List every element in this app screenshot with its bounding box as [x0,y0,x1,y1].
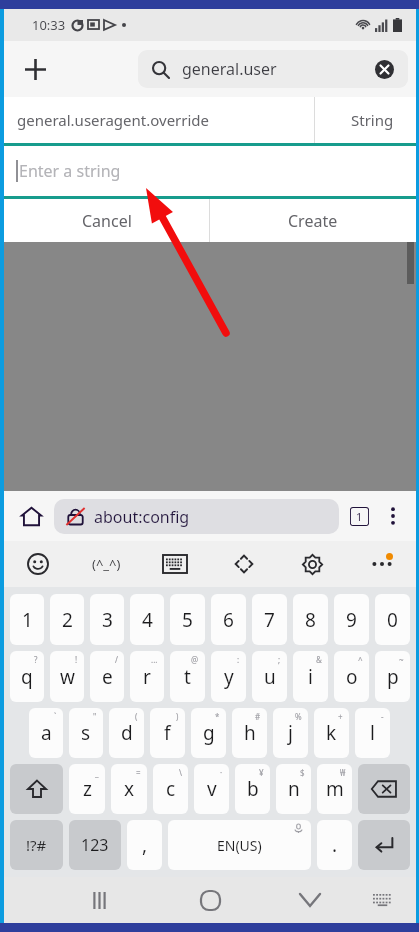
button[interactable]: x [111,764,147,814]
button[interactable]: 7 [252,594,287,645]
button[interactable]: 4 [130,594,164,645]
button[interactable]: Enter a string [4,146,416,196]
button[interactable]: r [130,651,164,702]
staticText: " [93,711,97,722]
button[interactable]: 1 [10,594,44,645]
staticText: String [351,110,394,130]
button[interactable]: Move cursor [209,541,278,587]
button[interactable]: 3 [90,594,124,645]
button[interactable]: s [69,708,103,758]
button[interactable]: o [334,651,369,702]
staticText: 1 [22,607,33,633]
button[interactable]: 6 [211,594,246,645]
button[interactable]: Menu [376,499,410,533]
button[interactable]: , [127,820,162,870]
staticText: r [143,664,151,690]
button[interactable]: EN(US) [168,820,311,870]
button[interactable]: c [153,764,188,814]
button[interactable]: general.user [138,50,408,88]
staticText: p [387,664,399,690]
button[interactable]: 9 [334,594,369,645]
button[interactable]: . [317,820,352,870]
button[interactable]: Backspace [358,764,410,814]
staticText: general.useragent.override [17,110,210,130]
staticText: · [220,767,223,778]
staticText: w [60,664,75,690]
staticText: x [124,776,135,802]
button[interactable]: Keyboard layout [140,541,209,587]
staticText: . [332,832,338,858]
button[interactable]: Hide keyboard [289,879,331,921]
button[interactable]: v [194,764,229,814]
button[interactable]: b [235,764,270,814]
button[interactable]: Emoji [4,541,72,587]
button[interactable]: n [276,764,311,814]
button[interactable]: Home [12,497,50,535]
button[interactable]: i [293,651,328,702]
button[interactable]: Recents [78,879,120,921]
button[interactable]: e [90,651,124,702]
button[interactable]: Enter [358,820,410,870]
staticText: ? [34,654,38,665]
staticText: * [215,711,220,722]
staticText: 123 [81,834,109,856]
button[interactable]: about:config [54,499,339,534]
staticText: n [288,776,300,802]
button[interactable]: 0 [375,594,410,645]
button[interactable]: Add [14,48,56,90]
staticText: 8 [305,607,316,633]
button[interactable]: p [375,651,410,702]
button[interactable]: z [69,764,105,814]
staticText: 3 [102,607,113,633]
staticText: k [326,720,337,746]
button[interactable]: d [109,708,144,758]
staticText: b [247,776,259,802]
staticText: 4 [142,607,153,633]
staticText: $ [300,767,305,778]
button[interactable]: !?# [10,820,63,870]
button[interactable]: Shift [10,764,63,814]
staticText: ( [135,711,138,722]
staticText: 9 [346,607,357,633]
button[interactable]: l [355,708,390,758]
staticText: ^ [358,654,363,665]
staticText: l [370,720,375,746]
button[interactable]: h [232,708,267,758]
button[interactable]: a [29,708,63,758]
button[interactable]: y [211,651,246,702]
button[interactable]: w [50,651,84,702]
button[interactable]: 5 [170,594,205,645]
button[interactable]: general.useragent.override [4,97,416,143]
button[interactable]: Create [210,199,416,242]
button[interactable]: k [314,708,349,758]
button[interactable]: m [317,764,352,814]
button[interactable]: f [150,708,185,758]
button[interactable]: t [170,651,205,702]
button[interactable]: Kaomoji [72,541,140,587]
button[interactable]: Tabs [342,499,376,533]
staticText: ~ [399,654,404,665]
button[interactable]: More [347,541,416,587]
button[interactable]: Change keyboard [364,882,400,918]
staticText: s [81,720,91,746]
button[interactable]: q [10,651,44,702]
button[interactable]: Clear [370,55,398,83]
staticText: (^_^) [92,555,121,573]
button[interactable]: Settings [278,541,347,587]
staticText: / [115,654,118,665]
staticText: & [316,654,322,665]
button[interactable]: j [273,708,308,758]
staticText: q [21,664,33,690]
button[interactable]: Cancel [4,199,209,242]
button[interactable]: 123 [69,820,121,870]
button[interactable]: g [191,708,226,758]
button[interactable]: 8 [293,594,328,645]
staticText: Create [288,210,338,232]
staticText: : [237,654,240,665]
staticText: @ [191,654,199,665]
button[interactable]: 2 [50,594,84,645]
button[interactable]: u [252,651,287,702]
button[interactable]: Home [188,878,232,922]
staticText: 5 [182,607,193,633]
staticText: !?# [26,835,47,855]
